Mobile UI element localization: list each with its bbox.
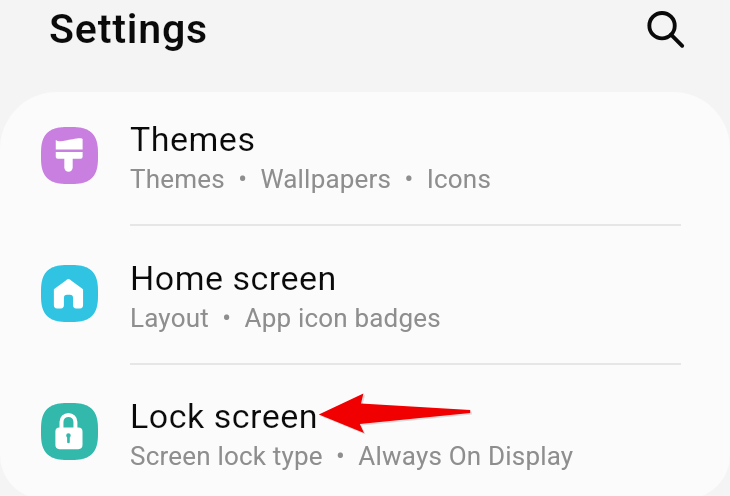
- staticText: Layout • App icon badges: [130, 303, 441, 333]
- button[interactable]: Lock screen: [0, 364, 730, 496]
- button[interactable]: Themes: [0, 92, 730, 226]
- button[interactable]: Home screen: [0, 226, 730, 365]
- staticText: Settings: [49, 5, 208, 53]
- staticText: Screen lock type • Always On Display: [130, 441, 574, 471]
- button[interactable]: Search: [634, 0, 690, 56]
- staticText: Themes: [130, 119, 256, 159]
- staticText: Themes • Wallpapers • Icons: [130, 164, 492, 194]
- staticText: Home screen: [130, 258, 337, 298]
- staticText: Lock screen: [130, 396, 319, 436]
